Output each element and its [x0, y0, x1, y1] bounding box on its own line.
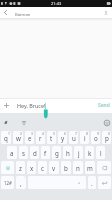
- staticText: z: [19, 164, 22, 172]
- staticText: f: [44, 149, 47, 157]
- staticText: ,: [20, 179, 22, 187]
- staticText: 2: [20, 131, 22, 136]
- button[interactable]: l: [96, 146, 105, 159]
- button[interactable]: o: [91, 131, 100, 144]
- button[interactable]: h: [63, 146, 72, 159]
- button[interactable]: w: [13, 131, 23, 144]
- button[interactable]: m: [85, 161, 95, 174]
- staticText: i: [84, 134, 86, 142]
- staticText: Batman: [15, 12, 31, 18]
- button[interactable]: Clipboard: [19, 118, 29, 128]
- button[interactable]: f: [41, 146, 50, 159]
- staticText: .: [91, 179, 93, 187]
- button[interactable]: r: [36, 131, 45, 144]
- button[interactable]: Emoji: [101, 117, 112, 128]
- staticText: 8: [86, 131, 88, 136]
- button[interactable]: Contact profile: [100, 7, 111, 18]
- button[interactable]: j: [74, 146, 83, 159]
- staticText: 7: [75, 131, 77, 136]
- staticText: 21:43: [51, 1, 62, 6]
- staticText: y: [61, 134, 65, 142]
- button[interactable]: Back: [0, 7, 11, 18]
- staticText: 5: [53, 131, 55, 136]
- staticText: p: [105, 134, 109, 142]
- staticText: j: [78, 149, 80, 157]
- button[interactable]: 12#: [1, 176, 14, 189]
- staticText: w: [16, 134, 21, 142]
- button[interactable]: s: [19, 146, 28, 159]
- button[interactable]: d: [30, 146, 39, 159]
- staticText: 4: [42, 131, 44, 136]
- button[interactable]: i: [80, 131, 89, 144]
- button[interactable]: c: [38, 161, 47, 174]
- button[interactable]: x: [27, 161, 36, 174]
- staticText: s: [22, 149, 25, 157]
- staticText: u: [72, 134, 76, 142]
- button[interactable]: Enter: [98, 176, 111, 189]
- button[interactable]: u: [69, 131, 78, 144]
- staticText: Hey, Bruce!: [17, 102, 46, 109]
- button[interactable]: k: [85, 146, 94, 159]
- staticText: o: [94, 134, 98, 142]
- staticText: l: [100, 149, 102, 157]
- staticText: c: [41, 164, 44, 172]
- button[interactable]: a: [7, 146, 17, 159]
- staticText: 9: [97, 131, 99, 136]
- button[interactable]: Shift: [1, 161, 14, 174]
- staticText: 6: [64, 131, 66, 136]
- staticText: q: [4, 134, 8, 142]
- staticText: d: [33, 149, 37, 157]
- staticText: e: [28, 134, 32, 142]
- staticText: 3: [31, 131, 33, 136]
- staticText: `: [24, 176, 25, 181]
- button[interactable]: n: [73, 161, 83, 174]
- staticText: 12#: [4, 180, 12, 186]
- button[interactable]: .: [88, 176, 96, 189]
- button[interactable]: v: [49, 161, 59, 174]
- staticText: x: [30, 164, 34, 172]
- staticText: h: [66, 149, 70, 157]
- staticText: v: [52, 164, 56, 172]
- staticText: n: [76, 164, 80, 172]
- button[interactable]: Add attachment: [0, 99, 13, 112]
- staticText: k: [88, 149, 92, 157]
- button[interactable]: y: [58, 131, 67, 144]
- staticText: m: [87, 164, 93, 172]
- staticText: Send: [98, 102, 110, 109]
- button[interactable]: ,: [16, 176, 26, 189]
- staticText: 1: [8, 131, 10, 136]
- staticText: r: [39, 134, 42, 142]
- button[interactable]: g: [52, 146, 61, 159]
- button[interactable]: e: [25, 131, 34, 144]
- button[interactable]: Backspace: [97, 161, 111, 174]
- button[interactable]: p: [102, 131, 111, 144]
- button[interactable]: t: [47, 131, 56, 144]
- button[interactable]: Stickers: [1, 117, 11, 127]
- staticText: 0: [108, 131, 110, 136]
- button[interactable]: b: [61, 161, 71, 174]
- staticText: b: [64, 164, 68, 172]
- button[interactable]: z: [16, 161, 25, 174]
- staticText: a: [10, 149, 14, 157]
- button[interactable]: q: [1, 131, 11, 144]
- button[interactable]: Send: [98, 102, 110, 110]
- staticText: g: [55, 149, 59, 157]
- staticText: t: [50, 134, 53, 142]
